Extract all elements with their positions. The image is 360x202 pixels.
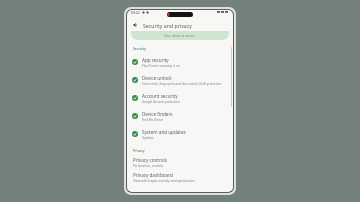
staticText: Device finders [142,111,173,117]
staticText: Updates [142,136,154,140]
staticText: Device unlock [142,75,172,81]
staticText: App security [142,57,169,63]
staticText: Privacy controls [133,157,167,163]
button[interactable]: Privacy dashboard [127,170,233,185]
staticText: System and updates [142,129,186,135]
staticText: Show which apps recently used permission… [133,179,195,183]
button[interactable]: Privacy controls [127,155,233,170]
staticText: Privacy [133,148,145,153]
button[interactable]: System and updates [127,125,233,143]
staticText: Google Account protection [142,100,180,104]
button[interactable]: Device finders [127,107,233,125]
staticText: Security [133,46,147,51]
button[interactable]: Your device is secure [131,31,229,40]
button[interactable]: Device unlock [127,71,233,89]
staticText: 09:22 [131,10,140,15]
staticText: Account security [142,93,178,99]
staticText: Permissions, controls [133,164,164,168]
staticText: Find My Device [142,118,164,122]
staticText: Play Protect scanning is on [142,64,180,68]
staticText: Privacy dashboard [133,172,173,178]
staticText: Your device is secure [164,34,196,38]
staticText: Security and privacy [143,22,192,29]
button[interactable]: Back [131,21,139,29]
staticText: Screen lock, fingerprint and face unlock… [142,82,222,86]
button[interactable]: App security [127,53,233,71]
button[interactable]: Account security [127,89,233,107]
